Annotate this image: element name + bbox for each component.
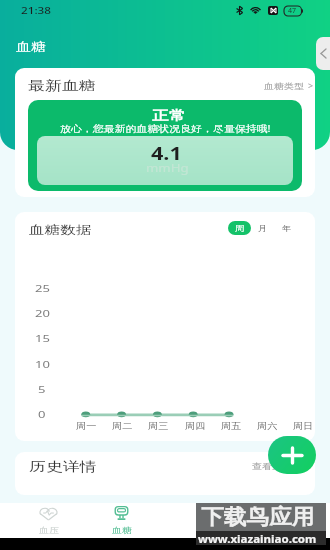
staticText: 月 xyxy=(258,224,268,233)
staticText: 周四 xyxy=(185,421,205,432)
staticText: 年 xyxy=(282,224,292,233)
button[interactable]: 月 xyxy=(255,221,271,235)
button[interactable]: 血糖 xyxy=(85,503,158,538)
button[interactable]: 年 xyxy=(279,221,295,235)
staticText: 血糖 xyxy=(112,525,132,535)
staticText: 4.1 xyxy=(151,141,182,166)
staticText: 血糖类型 xyxy=(264,81,304,91)
button[interactable]: 血压 xyxy=(12,503,85,538)
staticText: > xyxy=(308,80,313,91)
staticText: www.xiazainiao.com xyxy=(198,531,317,545)
button[interactable]: 周 xyxy=(228,221,251,235)
staticText: 正常 xyxy=(152,107,185,123)
button[interactable]: Add record xyxy=(268,436,316,474)
staticText: 下载鸟应用 xyxy=(201,504,314,530)
staticText: 周日 xyxy=(293,421,313,432)
staticText: 20 xyxy=(35,307,51,319)
staticText: 15 xyxy=(35,332,51,344)
staticText: 历史详情 xyxy=(29,458,97,474)
staticText: 25 xyxy=(35,282,51,294)
staticText: 放心，您最新的血糖状况良好，尽量保持哦! xyxy=(60,122,272,135)
staticText: 血糖数据 xyxy=(29,222,91,237)
staticText: 0 xyxy=(38,408,47,420)
staticText: 周二 xyxy=(112,421,132,432)
staticText: 周五 xyxy=(221,421,241,432)
staticText: 血压 xyxy=(39,525,59,535)
staticText: 21:38 xyxy=(21,4,52,16)
button[interactable]: 血糖类型 xyxy=(264,78,313,93)
staticText: mmHg xyxy=(146,160,189,175)
button[interactable]: 历史详情 xyxy=(15,452,315,495)
staticText: 10 xyxy=(35,358,51,370)
staticText: 血糖 xyxy=(16,39,46,54)
staticText: 周六 xyxy=(257,421,277,432)
staticText: 周一 xyxy=(76,421,96,432)
staticText: 查看更多 xyxy=(252,461,292,471)
staticText: 47 xyxy=(288,6,297,16)
staticText: 最新血糖 xyxy=(28,77,96,93)
staticText: 周 xyxy=(235,224,245,233)
staticText: 5 xyxy=(38,383,47,395)
button[interactable]: Back xyxy=(316,37,330,70)
staticText: 周三 xyxy=(148,421,168,432)
